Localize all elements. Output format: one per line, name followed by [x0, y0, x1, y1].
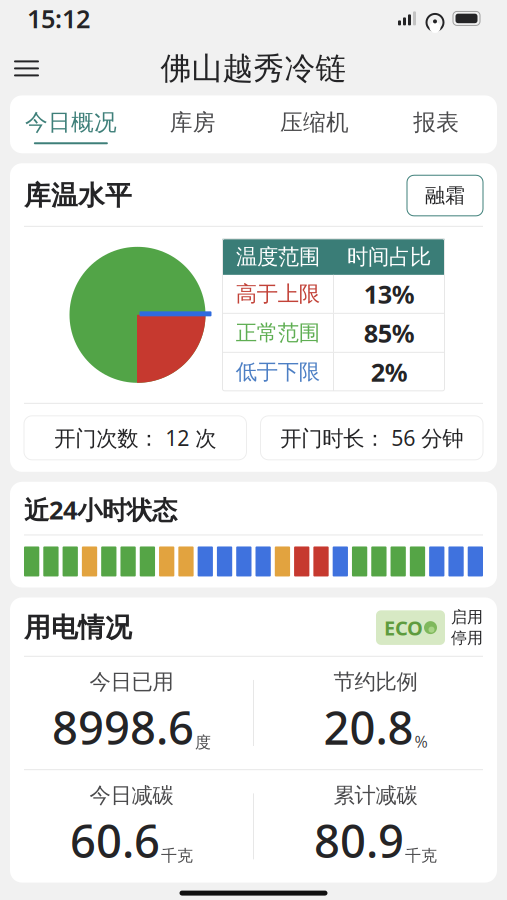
button[interactable]: 报表	[375, 95, 497, 153]
staticText: 今日减碳	[89, 782, 173, 808]
staticText: 近24小时状态	[24, 493, 177, 526]
staticText: 报表	[413, 108, 459, 136]
staticText: ECO	[384, 614, 423, 641]
staticText: 温度范围	[236, 244, 320, 270]
button[interactable]: 启用	[451, 607, 483, 627]
staticText: 库房	[170, 108, 216, 136]
button[interactable]: 节能模式	[376, 610, 445, 645]
staticText: 节约比例	[333, 669, 417, 695]
button[interactable]: 今日概况	[10, 95, 132, 153]
staticText: 度	[195, 732, 211, 752]
staticText: 压缩机	[280, 108, 349, 136]
staticText: 用电情况	[24, 611, 132, 644]
staticText: 千克	[405, 846, 437, 866]
button[interactable]: 压缩机	[253, 95, 375, 153]
staticText: 时间占比	[347, 244, 431, 270]
staticText: 15:12	[27, 2, 90, 35]
button[interactable]: 停用	[451, 628, 483, 648]
staticText: 高于上限	[236, 281, 320, 307]
staticText: 今日已用	[89, 669, 173, 695]
staticText: 千克	[161, 846, 193, 866]
button[interactable]: 开门时长： 56 分钟	[260, 416, 483, 460]
staticText: %	[414, 731, 427, 752]
staticText: 累计减碳	[333, 782, 417, 808]
staticText: 启用	[451, 607, 483, 627]
staticText: 13%	[364, 277, 415, 311]
staticText: 正常范围	[236, 320, 320, 346]
staticText: 2%	[371, 355, 408, 389]
staticText: 开门次数： 12 次	[54, 424, 216, 452]
staticText: 融霜	[425, 183, 465, 208]
staticText: 低于下限	[236, 359, 320, 385]
staticText: 85%	[364, 316, 415, 350]
button[interactable]: 融霜	[407, 175, 483, 216]
button[interactable]: 库房	[132, 95, 254, 153]
staticText: 停用	[451, 628, 483, 648]
staticText: 开门时长： 56 分钟	[280, 424, 463, 452]
button[interactable]: 开门次数： 12 次	[24, 416, 246, 460]
button[interactable]: 菜单	[0, 48, 53, 88]
staticText: 今日概况	[25, 108, 117, 136]
staticText: 80.9	[314, 810, 404, 871]
staticText: 库温水平	[24, 179, 132, 212]
staticText: 8998.6	[52, 697, 194, 757]
staticText: 20.8	[323, 697, 413, 757]
staticText: 佛山越秀冷链	[160, 50, 346, 87]
staticText: 60.6	[70, 810, 160, 871]
